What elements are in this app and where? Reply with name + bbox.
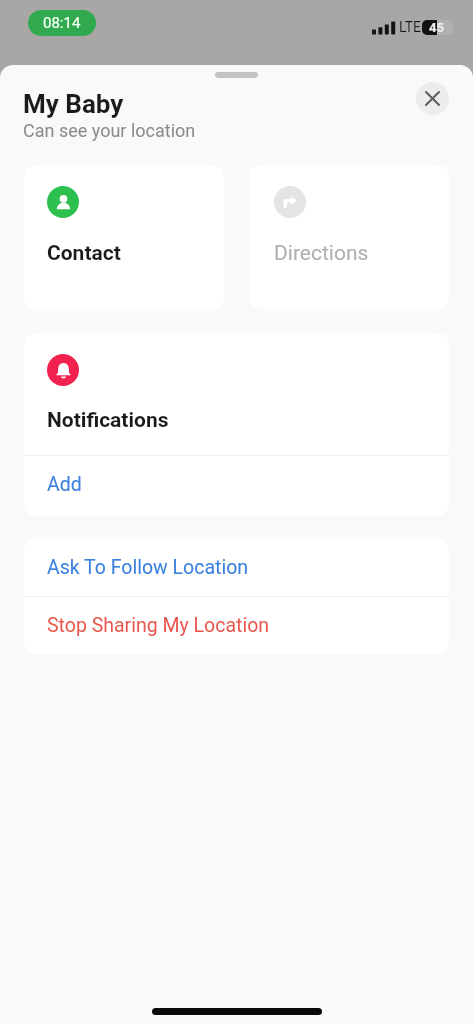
staticText: Stop Sharing My Location	[47, 614, 270, 637]
staticText: 45	[429, 20, 444, 35]
staticText: Directions	[274, 241, 369, 266]
staticText: Can see your location	[23, 120, 196, 141]
staticText: LTE	[399, 19, 421, 35]
staticText: My Baby	[23, 89, 124, 119]
button[interactable]: Stop Sharing My Location	[24, 597, 449, 654]
button[interactable]: Contact	[24, 165, 224, 309]
button[interactable]: Close	[416, 82, 449, 115]
staticText: Add	[47, 473, 82, 496]
staticText: Ask To Follow Location	[47, 556, 249, 579]
staticText: Notifications	[47, 408, 169, 433]
button[interactable]: Ask To Follow Location	[24, 539, 449, 596]
button[interactable]: Add	[24, 456, 449, 516]
staticText: Contact	[47, 241, 121, 266]
button[interactable]: Notifications	[24, 333, 449, 455]
button[interactable]: Directions	[249, 165, 449, 309]
staticText: 08:14	[43, 14, 81, 32]
